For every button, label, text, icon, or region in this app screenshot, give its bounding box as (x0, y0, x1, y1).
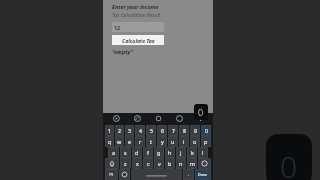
button[interactable]: z (120, 158, 131, 169)
button[interactable]: l (198, 147, 208, 158)
staticText: g (157, 149, 161, 156)
button[interactable]: Keyboard tool 4 (190, 113, 210, 124)
staticText: z (124, 160, 127, 167)
staticText: 9 (194, 127, 197, 134)
button[interactable]: x (132, 158, 142, 169)
button[interactable]: p (201, 136, 211, 147)
staticText: x (136, 160, 139, 167)
button[interactable]: o (190, 136, 200, 147)
button[interactable]: Keyboard tool 2 (148, 113, 169, 124)
staticText: . (188, 171, 190, 178)
staticText: w (117, 138, 122, 145)
staticText: 5 (150, 127, 153, 134)
staticText: n (179, 160, 183, 167)
button[interactable]: Emoji (119, 169, 130, 180)
button[interactable]: Keyboard tool 3 (169, 113, 190, 124)
staticText: 3 (128, 127, 131, 134)
staticText: ?1 (109, 172, 114, 178)
staticText: Tax Calculation Result (112, 12, 161, 19)
staticText: 0 (205, 127, 208, 134)
staticText: 4 (139, 127, 142, 134)
staticText: 8 (183, 127, 186, 134)
button[interactable]: e (125, 136, 134, 147)
staticText: q (108, 138, 112, 145)
button[interactable]: s (120, 147, 131, 158)
button[interactable]: 3 (125, 125, 134, 136)
button[interactable]: a (108, 147, 119, 158)
button[interactable]: r (135, 136, 145, 147)
staticText: 7 (172, 127, 175, 134)
button[interactable]: Recording indicator (194, 104, 208, 120)
staticText: l (202, 149, 204, 156)
button[interactable]: 12 (112, 22, 164, 32)
button[interactable]: d (132, 147, 142, 158)
staticText: r (139, 138, 142, 145)
button[interactable]: Done (195, 169, 211, 180)
button[interactable]: b (165, 158, 175, 169)
button[interactable]: 7 (168, 125, 178, 136)
button[interactable]: 4 (135, 125, 145, 136)
button[interactable]: Keyboard tool 0 (106, 113, 127, 124)
staticText: u (171, 138, 175, 145)
button[interactable]: Backspace (198, 158, 211, 169)
staticText: Done (198, 172, 208, 177)
button[interactable]: j (176, 147, 186, 158)
staticText: 2 (118, 127, 121, 134)
staticText: 1 (108, 127, 111, 134)
button[interactable]: h (165, 147, 175, 158)
staticText: s (124, 149, 127, 156)
button[interactable]: Space (131, 169, 182, 180)
button[interactable]: u (168, 136, 178, 147)
staticText: m (190, 160, 195, 167)
staticText: 0 (198, 106, 204, 118)
staticText: j (180, 149, 182, 156)
staticText: Enter your income (112, 3, 159, 10)
button[interactable]: y (157, 136, 167, 147)
button[interactable]: q (105, 136, 114, 147)
button[interactable]: 1 (105, 125, 114, 136)
button[interactable]: g (154, 147, 164, 158)
button[interactable]: n (176, 158, 186, 169)
button[interactable]: t (146, 136, 156, 147)
button[interactable]: k (187, 147, 197, 158)
staticText: 12 (114, 24, 121, 31)
staticText: "empty" (112, 48, 133, 55)
staticText: o (193, 138, 197, 145)
button[interactable]: 6 (157, 125, 167, 136)
button[interactable]: 2 (115, 125, 124, 136)
staticText: b (168, 160, 172, 167)
staticText: k (191, 149, 194, 156)
button[interactable]: c (143, 158, 153, 169)
button[interactable]: m (187, 158, 197, 169)
staticText: Calculate Tax (122, 37, 155, 44)
staticText: y (161, 138, 164, 145)
button[interactable]: . (183, 169, 194, 180)
button[interactable]: Keyboard tool 1 (127, 113, 148, 124)
staticText: 0 (280, 146, 298, 180)
staticText: e (128, 138, 131, 145)
staticText: f (147, 149, 149, 156)
button[interactable]: w (115, 136, 124, 147)
button[interactable]: Floating recorder button (266, 134, 312, 180)
button[interactable]: Shift (105, 158, 119, 169)
staticText: v (158, 160, 161, 167)
button[interactable]: 9 (190, 125, 200, 136)
staticText: d (135, 149, 139, 156)
button[interactable]: ?1 (105, 169, 118, 180)
staticText: p (204, 138, 208, 145)
button[interactable]: Calculate Tax (112, 35, 164, 45)
button[interactable]: 8 (179, 125, 189, 136)
staticText: c (147, 160, 150, 167)
staticText: 6 (161, 127, 164, 134)
button[interactable]: v (154, 158, 164, 169)
button[interactable]: i (179, 136, 189, 147)
staticText: i (183, 138, 185, 145)
staticText: t (150, 138, 152, 145)
staticText: a (112, 149, 115, 156)
button[interactable]: 5 (146, 125, 156, 136)
button[interactable]: 0 (201, 125, 211, 136)
staticText: h (168, 149, 172, 156)
button[interactable]: f (143, 147, 153, 158)
